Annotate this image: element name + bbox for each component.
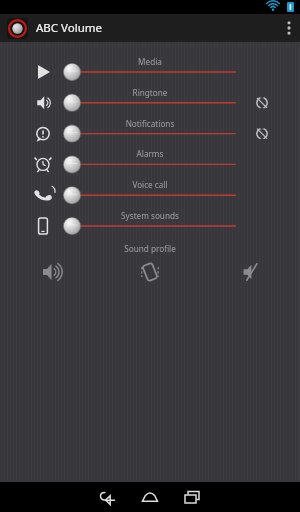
button[interactable]: More options xyxy=(278,14,300,42)
button[interactable]: Notifications xyxy=(0,119,300,149)
button[interactable]: App icon xyxy=(7,18,28,39)
button[interactable]: Voice call xyxy=(0,180,300,210)
staticText: Alarms xyxy=(0,148,300,159)
staticText: Ringtone xyxy=(0,87,300,98)
staticText: Sound profile xyxy=(0,243,300,254)
button[interactable]: Media xyxy=(0,57,300,87)
staticText: Voice call xyxy=(0,179,300,190)
button[interactable]: System sounds xyxy=(0,211,300,241)
button[interactable]: Home xyxy=(133,482,167,512)
staticText: Notifications xyxy=(0,118,300,129)
button[interactable]: Recents xyxy=(175,482,209,512)
staticText: Media xyxy=(0,56,300,67)
button[interactable]: Alarms xyxy=(0,149,300,179)
button[interactable]: Vibrate xyxy=(100,255,200,289)
staticText: System sounds xyxy=(0,210,300,221)
staticText: ABC Volume xyxy=(36,20,103,36)
button[interactable]: Sound on xyxy=(0,255,100,289)
button[interactable]: Ringtone xyxy=(0,88,300,118)
button[interactable]: Back xyxy=(91,482,125,512)
button[interactable]: Silent xyxy=(200,255,300,289)
